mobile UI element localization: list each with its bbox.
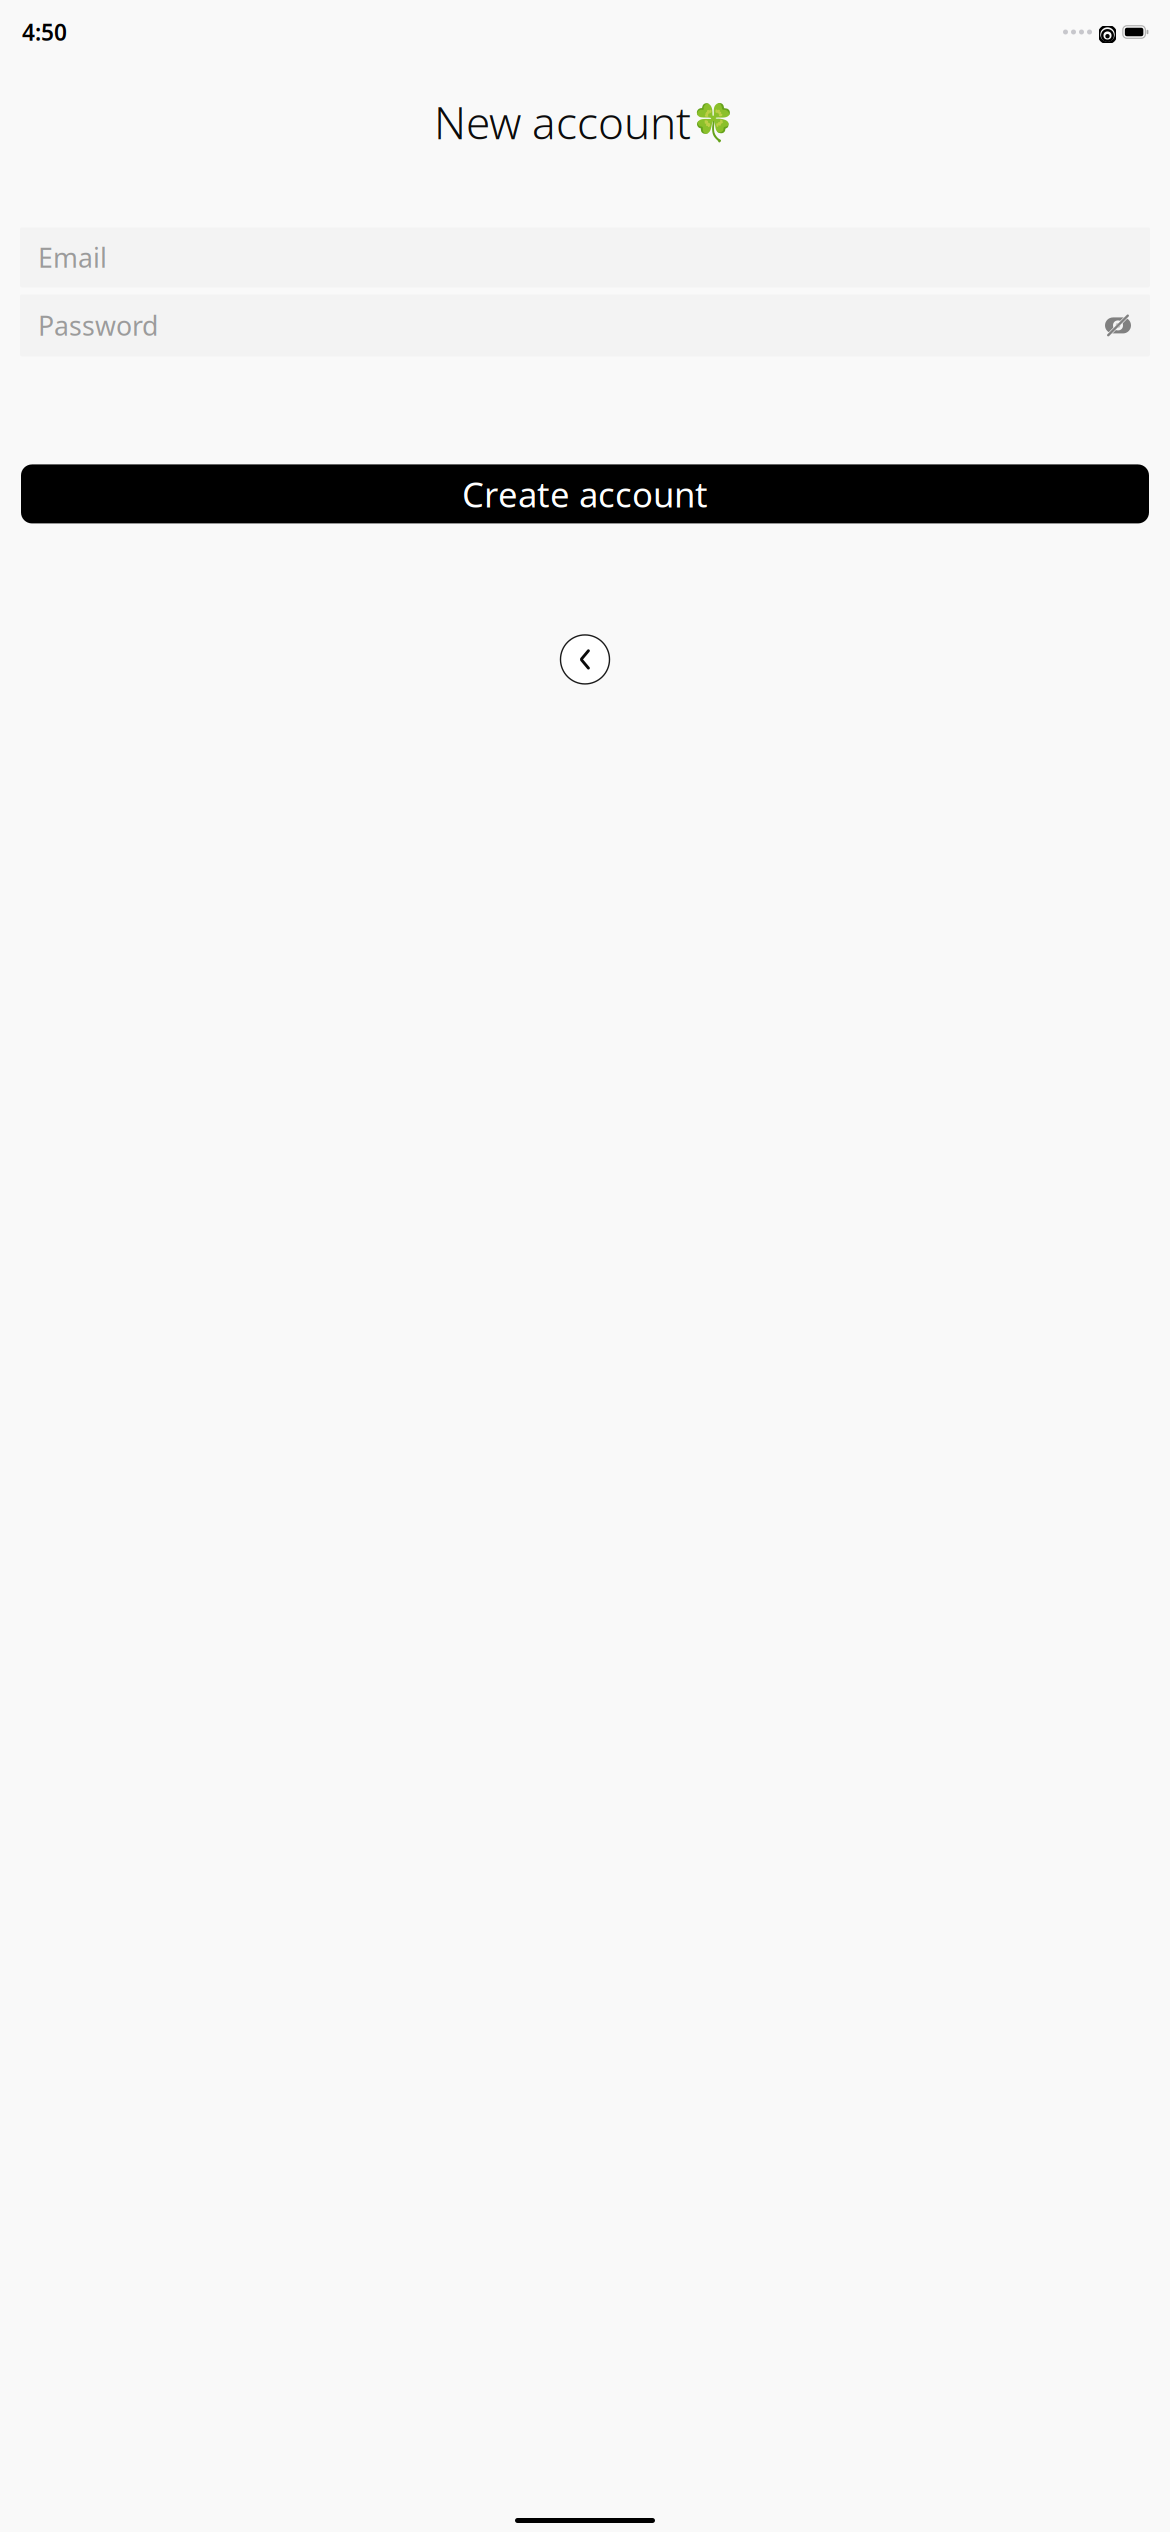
staticText: 🍀 [691, 102, 736, 143]
staticText: Email [38, 240, 107, 275]
staticText: New account [434, 93, 691, 151]
button[interactable]: Show password [1104, 311, 1132, 339]
staticText: Create account [462, 471, 708, 517]
button[interactable]: Create account [21, 464, 1149, 523]
staticText: 4:50 [22, 17, 67, 47]
button[interactable]: Back [559, 633, 611, 685]
staticText: Password [38, 308, 158, 343]
